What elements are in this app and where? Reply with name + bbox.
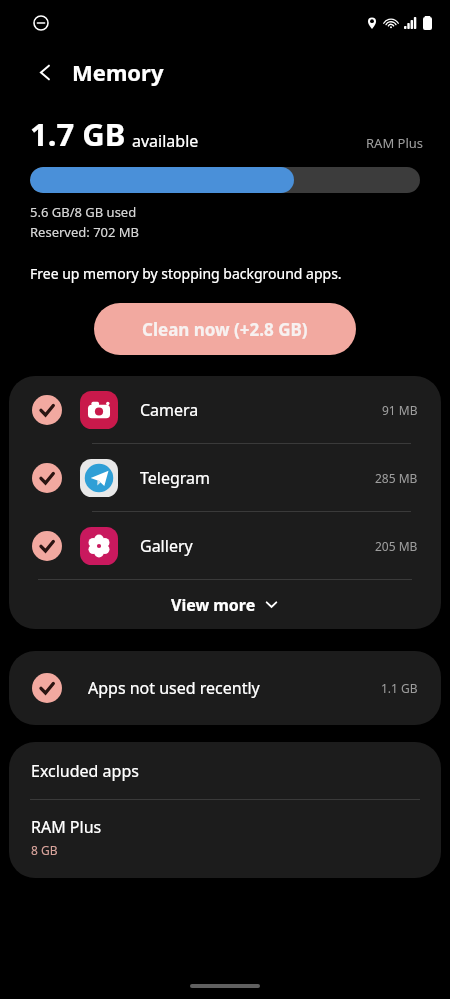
button[interactable]: View more (9, 580, 441, 629)
button[interactable]: Select Camera (32, 395, 62, 425)
staticText: Clean now (+2.8 GB) (142, 318, 308, 341)
staticText: Gallery (140, 535, 375, 557)
staticText: 91 MB (382, 402, 418, 418)
button[interactable]: Clean now (+2.8 GB) (94, 303, 356, 355)
staticText: Telegram (140, 467, 375, 489)
button[interactable]: Excluded apps (9, 742, 441, 799)
staticText: 8 GB (31, 842, 58, 858)
button[interactable]: Select Gallery (9, 512, 441, 579)
button[interactable]: Select Telegram (9, 444, 441, 511)
button[interactable]: Apps not used recently (9, 651, 441, 725)
button[interactable]: RAM Plus (9, 800, 441, 878)
staticText: RAM Plus (366, 134, 424, 152)
staticText: available (132, 130, 199, 152)
staticText: 1.1 GB (381, 680, 418, 696)
staticText: 1.7 GB (30, 113, 126, 155)
staticText: Memory (72, 57, 164, 87)
button[interactable]: Back (28, 55, 62, 89)
staticText: RAM Plus (31, 816, 102, 838)
staticText: Camera (140, 399, 382, 421)
button[interactable]: Select Telegram (32, 463, 62, 493)
staticText: Excluded apps (31, 760, 139, 782)
staticText: Apps not used recently (88, 677, 381, 699)
button[interactable]: Select Gallery (32, 531, 62, 561)
staticText: 285 MB (375, 470, 418, 486)
staticText: 5.6 GB/8 GB used (30, 203, 137, 221)
staticText: Reserved: 702 MB (30, 223, 140, 241)
button[interactable]: RAM Plus (366, 134, 424, 152)
staticText: Free up memory by stopping background ap… (30, 264, 342, 283)
staticText: View more (171, 594, 256, 616)
button[interactable]: Select Camera (9, 376, 441, 443)
staticText: 205 MB (375, 538, 418, 554)
